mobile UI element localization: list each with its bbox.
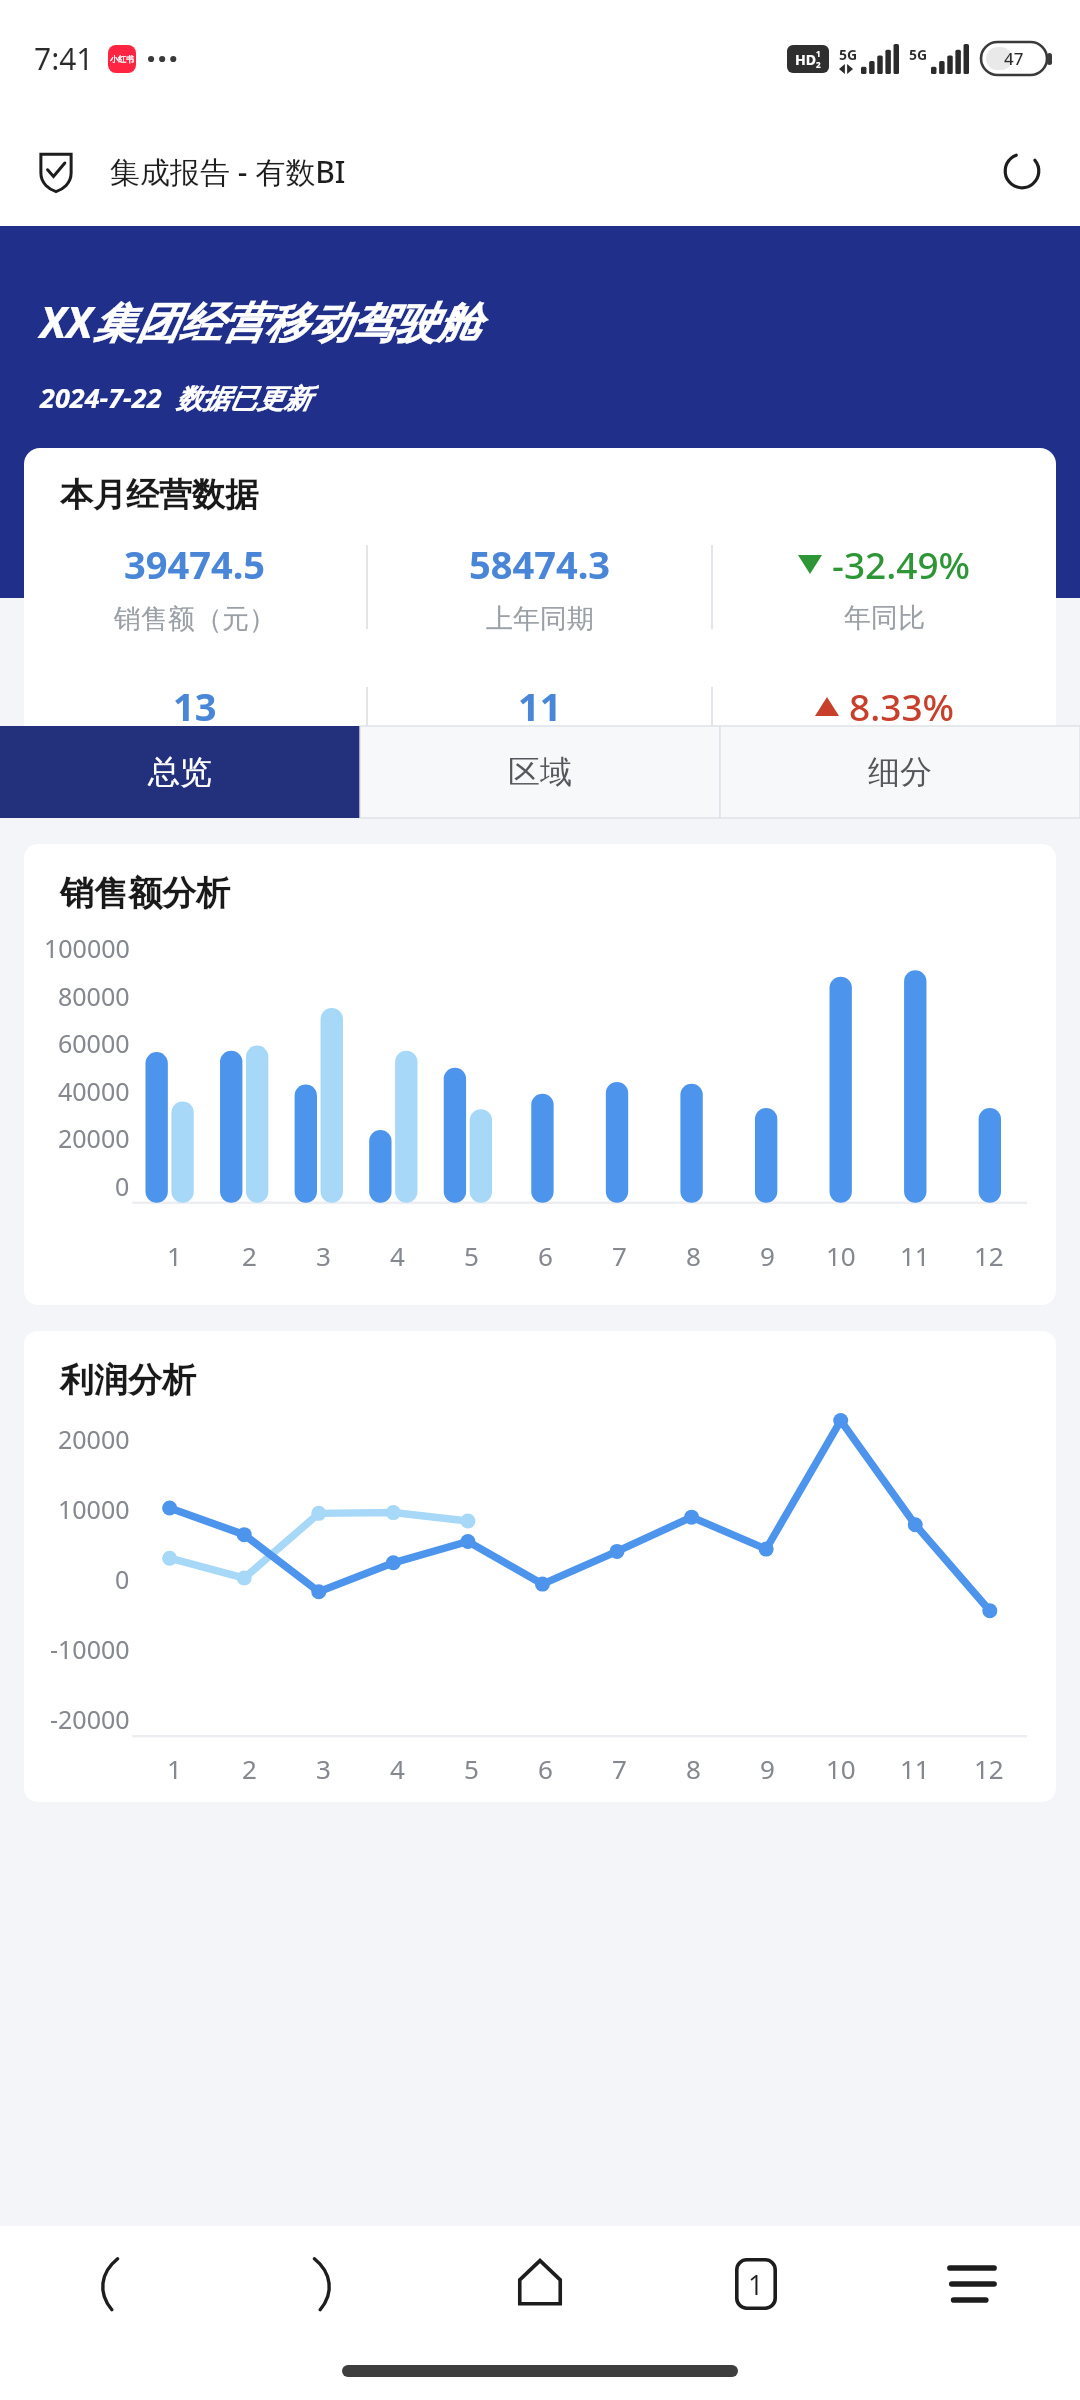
staticText: 7 [612, 1238, 627, 1273]
staticText: 13 [173, 680, 217, 732]
staticText: 11 [518, 680, 562, 732]
staticText: 20000 [58, 1422, 130, 1456]
staticText: 12 [974, 1751, 1004, 1786]
staticText: 细分 [868, 752, 932, 792]
staticText: 0 [115, 1562, 130, 1596]
staticText: 5G [909, 45, 928, 64]
staticText: 2 [242, 1751, 257, 1786]
staticText: 5 [464, 1751, 479, 1786]
staticText: 3 [316, 1751, 331, 1786]
button[interactable]: Menu [864, 2226, 1080, 2342]
staticText: 7:41 [34, 38, 94, 79]
staticText: 100000 [44, 931, 130, 965]
staticText: 6 [538, 1751, 553, 1786]
staticText: 10 [826, 1751, 856, 1786]
staticText: 10 [826, 1238, 856, 1273]
staticText: 47 [1004, 47, 1024, 70]
staticText: 销售额（元） [114, 602, 276, 636]
button[interactable]: Forward [216, 2226, 432, 2342]
staticText: 7 [612, 1751, 627, 1786]
button[interactable]: 总览 [0, 726, 360, 818]
staticText: 11 [900, 1751, 930, 1786]
button[interactable]: 细分 [720, 726, 1080, 818]
staticText: 2024-7-22 数据已更新 [40, 379, 311, 416]
staticText: 1 [167, 1751, 182, 1786]
staticText: 总览 [148, 752, 212, 792]
staticText: 20000 [58, 1121, 130, 1155]
button[interactable]: Verified [28, 143, 84, 199]
staticText: 上年同期 [486, 602, 594, 636]
staticText: 1 [816, 48, 821, 59]
staticText: 10000 [58, 1492, 130, 1526]
staticText: 9 [760, 1238, 775, 1273]
button[interactable]: 区域 [360, 726, 720, 818]
staticText: 9 [760, 1751, 775, 1786]
staticText: 60000 [58, 1026, 130, 1060]
staticText: 订单量 [155, 744, 236, 778]
staticText: HD [795, 50, 816, 69]
staticText: XX集团经营移动驾驶舱 [40, 292, 480, 351]
staticText: 去年同期 [486, 744, 594, 778]
staticText: 8 [686, 1751, 701, 1786]
staticText: -20000 [50, 1702, 130, 1736]
staticText: 年同比 [844, 601, 925, 635]
staticText: 区域 [508, 752, 572, 792]
staticText: 5 [464, 1238, 479, 1273]
staticText: 4 [390, 1751, 405, 1786]
staticText: 12 [974, 1238, 1004, 1273]
staticText: 8 [686, 1238, 701, 1273]
staticText: 2 [242, 1238, 257, 1273]
button[interactable]: Tabs [648, 2226, 864, 2342]
staticText: 1 [167, 1238, 182, 1273]
button[interactable]: Home [432, 2226, 648, 2342]
staticText: 4 [390, 1238, 405, 1273]
staticText: 小红书 [110, 54, 134, 64]
staticText: 6 [538, 1238, 553, 1273]
staticText: 3 [316, 1238, 331, 1273]
staticText: -10000 [50, 1632, 130, 1666]
staticText: 39474.5 [124, 538, 266, 590]
staticText: 利润分析 [60, 1359, 196, 1402]
button[interactable]: Back [0, 2226, 216, 2342]
staticText: 8.33% [849, 681, 955, 731]
staticText: -32.49% [832, 539, 971, 589]
button[interactable]: Refresh [992, 141, 1052, 201]
staticText: 0 [115, 1169, 130, 1203]
staticText: 销售额分析 [60, 872, 230, 915]
staticText: 2 [816, 59, 821, 70]
staticText: 本月经营数据 [60, 474, 258, 516]
staticText: 年同比 [844, 743, 925, 777]
staticText: 11 [900, 1238, 930, 1273]
staticText: 40000 [58, 1074, 130, 1108]
staticText: 集成报告 - 有数BI [110, 151, 346, 192]
staticText: 58474.3 [469, 538, 611, 590]
staticText: 1 [748, 2266, 764, 2303]
staticText: 5G [839, 45, 858, 64]
staticText: 80000 [58, 979, 130, 1013]
